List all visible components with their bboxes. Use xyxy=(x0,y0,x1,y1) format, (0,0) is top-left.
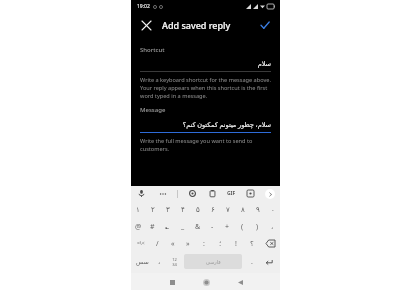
button[interactable]: Voice input xyxy=(136,188,147,199)
staticText: ۱ xyxy=(136,206,140,214)
button[interactable]: ؛ xyxy=(212,235,228,252)
button[interactable]: Settings xyxy=(187,188,198,199)
button[interactable]: ؟ xyxy=(244,235,260,252)
button[interactable]: Back xyxy=(232,274,248,290)
staticText: ۴ xyxy=(181,206,185,214)
staticText: Write a keyboard shortcut for the messag… xyxy=(140,76,271,100)
button[interactable]: ؎ xyxy=(160,218,175,235)
button[interactable]: ۸ xyxy=(235,201,250,218)
staticText: # xyxy=(150,222,155,232)
button[interactable]: ۲ xyxy=(145,201,160,218)
button[interactable]: فارسی xyxy=(184,254,242,269)
button[interactable]: & xyxy=(190,218,205,235)
staticText: » xyxy=(186,239,190,249)
button[interactable]: ، xyxy=(152,254,167,269)
button[interactable]: ۹ xyxy=(250,201,265,218)
button[interactable]: » xyxy=(180,235,196,252)
button[interactable]: Expand toolbar xyxy=(265,189,275,199)
button[interactable]: =\< xyxy=(131,235,150,252)
button[interactable]: ۷ xyxy=(220,201,235,218)
button[interactable]: ( xyxy=(235,218,250,235)
button[interactable]: _ xyxy=(175,218,190,235)
staticText: ؎ xyxy=(165,223,170,231)
button[interactable]: ۳ xyxy=(160,201,175,218)
staticText: Message xyxy=(140,106,166,114)
staticText: @ xyxy=(135,222,142,232)
staticText: 12 34 xyxy=(172,257,177,267)
staticText: & xyxy=(195,222,201,232)
staticText: ۲ xyxy=(151,206,155,214)
button[interactable]: ) xyxy=(250,218,265,235)
staticText: ۰ xyxy=(271,206,275,214)
button[interactable]: Stickers xyxy=(245,188,256,199)
button[interactable]: « xyxy=(165,235,180,252)
staticText: : xyxy=(203,239,205,249)
staticText: 19:02 xyxy=(137,3,150,10)
staticText: GIF xyxy=(227,190,236,197)
button[interactable]: # xyxy=(145,218,160,235)
staticText: . xyxy=(251,257,253,267)
button[interactable]: - xyxy=(205,218,220,235)
staticText: ۶ xyxy=(211,206,215,214)
button[interactable]: Numbers xyxy=(167,254,182,269)
button[interactable]: + xyxy=(220,218,235,235)
button[interactable]: Backspace xyxy=(260,235,280,252)
staticText: ۳ xyxy=(166,206,170,214)
staticText: ) xyxy=(256,222,259,232)
staticText: ؛ xyxy=(219,240,222,248)
button[interactable]: ۰ xyxy=(265,201,280,218)
staticText: ۹ xyxy=(256,206,260,214)
staticText: سلام xyxy=(140,60,271,68)
staticText: / xyxy=(156,239,159,249)
button[interactable]: @ xyxy=(131,218,145,235)
staticText: _ xyxy=(181,222,185,232)
staticText: سلام، چطور میتونم کمکتون کنم؟ xyxy=(140,120,271,129)
staticText: + xyxy=(225,222,230,232)
button[interactable]: GIF xyxy=(227,190,236,197)
staticText: « xyxy=(171,239,175,249)
staticText: سس xyxy=(136,258,149,265)
button[interactable]: ۵ xyxy=(190,201,205,218)
button[interactable]: Letters xyxy=(133,254,152,269)
staticText: - xyxy=(211,222,214,232)
staticText: ۸ xyxy=(241,206,245,214)
button[interactable]: سلام xyxy=(140,60,271,68)
button[interactable]: Clipboard xyxy=(207,188,218,199)
button[interactable]: Enter xyxy=(259,254,278,269)
staticText: Shortcut xyxy=(140,46,165,54)
staticText: ( xyxy=(241,222,244,232)
button[interactable]: Home xyxy=(198,274,214,290)
staticText: =\< xyxy=(137,240,145,247)
staticText: ۵ xyxy=(196,206,200,214)
button[interactable]: . xyxy=(244,254,259,269)
button[interactable]: سلام، چطور میتونم کمکتون کنم؟ xyxy=(140,120,271,129)
staticText: Add saved reply xyxy=(162,19,231,31)
staticText: ، xyxy=(158,258,161,266)
button[interactable]: ۶ xyxy=(205,201,220,218)
staticText: ! xyxy=(235,239,237,249)
button[interactable]: Recents xyxy=(164,274,180,290)
staticText: فارسی xyxy=(206,259,221,265)
staticText: ۷ xyxy=(226,206,230,214)
button[interactable]: ۱ xyxy=(131,201,145,218)
staticText: ، xyxy=(271,223,274,231)
button[interactable]: ۴ xyxy=(175,201,190,218)
button[interactable]: Close xyxy=(138,17,154,33)
button[interactable]: ، xyxy=(265,218,280,235)
button[interactable]: : xyxy=(196,235,212,252)
button[interactable]: / xyxy=(150,235,165,252)
button[interactable]: Save xyxy=(257,17,273,33)
button[interactable]: More xyxy=(157,188,168,199)
staticText: ؟ xyxy=(250,240,254,248)
button[interactable]: ! xyxy=(228,235,244,252)
staticText: Write the full message you want to send … xyxy=(140,137,271,153)
